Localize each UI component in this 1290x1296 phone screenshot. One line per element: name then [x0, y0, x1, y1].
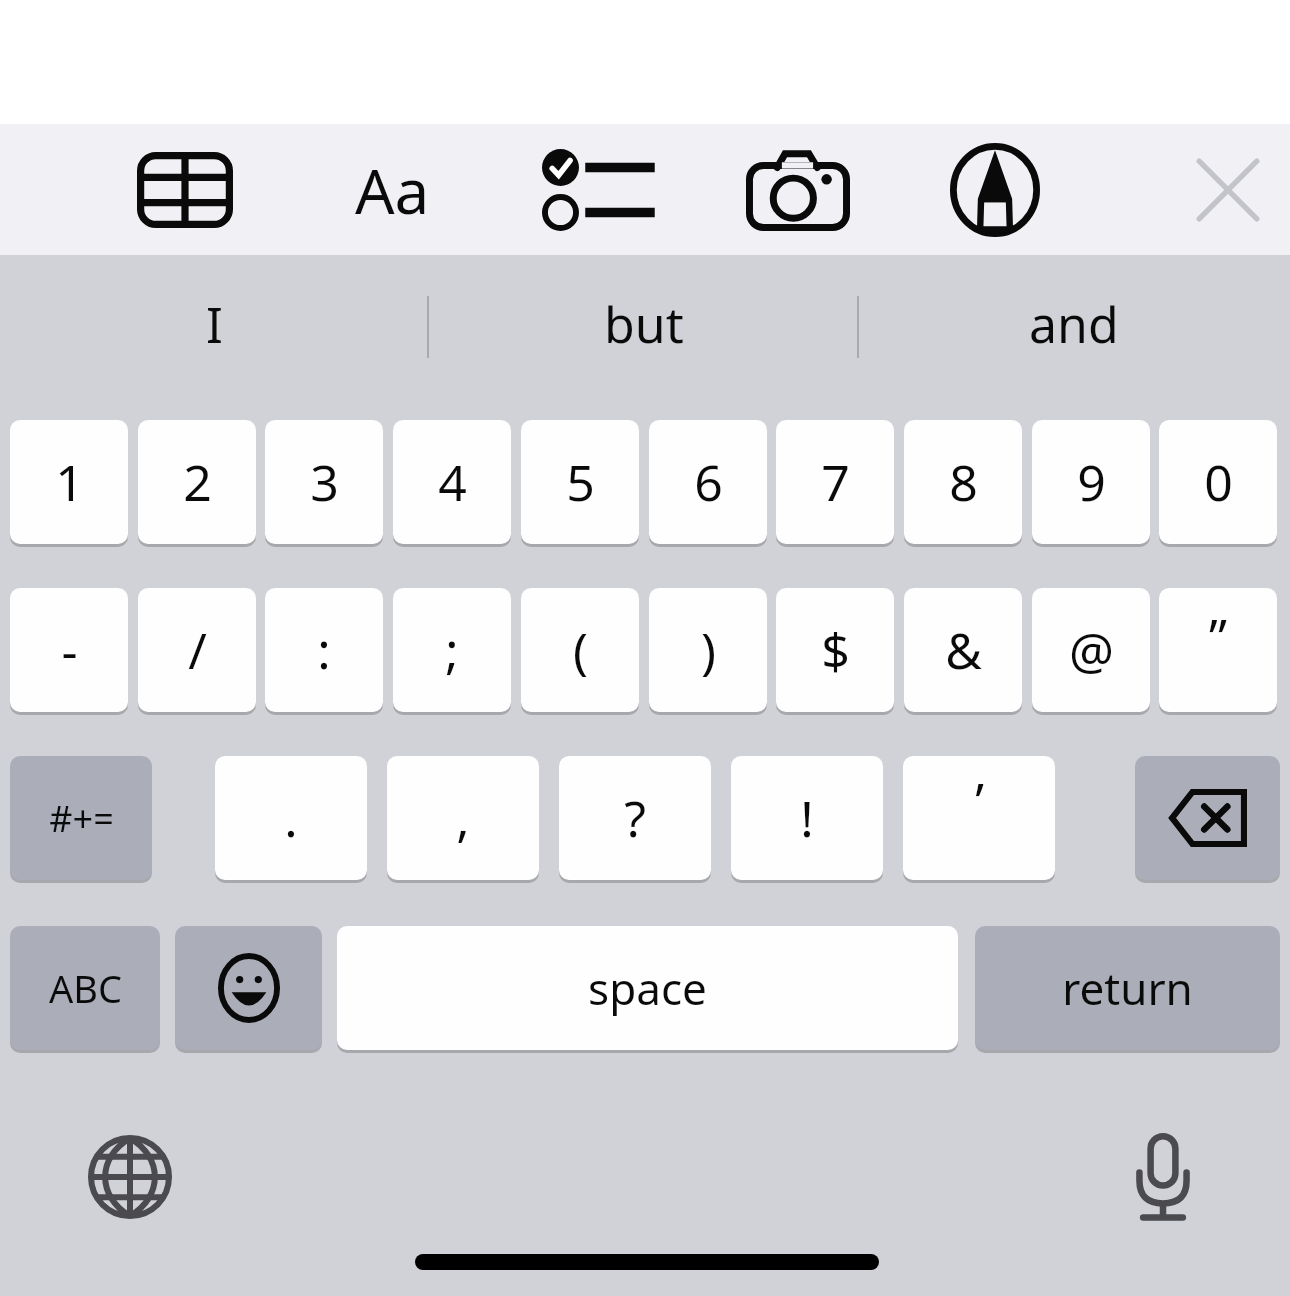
staticText: and	[1029, 290, 1119, 358]
button[interactable]: 5	[521, 420, 639, 544]
staticText: ”	[1209, 602, 1227, 670]
staticText: #+=	[49, 794, 114, 843]
staticText: 1	[55, 448, 84, 516]
staticText: return	[1062, 958, 1193, 1018]
button[interactable]: Checklist	[525, 124, 665, 255]
staticText: 2	[183, 448, 212, 516]
button[interactable]: Camera	[730, 124, 865, 255]
staticText: !	[800, 784, 814, 852]
staticText: ABC	[49, 962, 122, 1014]
button[interactable]: ;	[393, 588, 511, 712]
button[interactable]: :	[265, 588, 383, 712]
staticText: ,	[456, 784, 470, 852]
staticText: ’	[975, 766, 984, 834]
staticText: I	[206, 290, 223, 358]
staticText: 8	[949, 448, 978, 516]
staticText: :	[317, 616, 331, 684]
button[interactable]: 1	[10, 420, 128, 544]
button[interactable]: Close	[1178, 124, 1278, 255]
button[interactable]: 2	[138, 420, 256, 544]
button[interactable]: $	[776, 588, 894, 712]
button[interactable]: Insert table	[120, 124, 250, 255]
button[interactable]: @	[1032, 588, 1150, 712]
staticText: $	[821, 616, 850, 684]
staticText: 3	[310, 448, 339, 516]
button[interactable]: .	[215, 756, 367, 880]
staticText: (	[573, 616, 588, 684]
staticText: 0	[1204, 448, 1233, 516]
button[interactable]: )	[649, 588, 767, 712]
staticText: 5	[566, 448, 595, 516]
button[interactable]: Dictation	[1118, 1130, 1208, 1224]
button[interactable]: 4	[393, 420, 511, 544]
button[interactable]: but	[430, 262, 858, 386]
button[interactable]: 0	[1159, 420, 1277, 544]
staticText: Aa	[355, 148, 430, 232]
button[interactable]: #+=	[10, 756, 152, 880]
button[interactable]: 8	[904, 420, 1022, 544]
staticText: ;	[445, 616, 459, 684]
staticText: but	[604, 290, 684, 358]
button[interactable]: ,	[387, 756, 539, 880]
staticText: 4	[438, 448, 467, 516]
button[interactable]: Emoji keyboard	[175, 926, 322, 1050]
button[interactable]: -	[10, 588, 128, 712]
button[interactable]: 3	[265, 420, 383, 544]
staticText: @	[1069, 616, 1114, 684]
staticText: &	[945, 616, 982, 684]
button[interactable]: /	[138, 588, 256, 712]
button[interactable]: return	[975, 926, 1280, 1050]
button[interactable]: ABC	[10, 926, 160, 1050]
button[interactable]: &	[904, 588, 1022, 712]
staticText: .	[284, 784, 298, 852]
staticText: ?	[624, 784, 646, 852]
staticText: space	[588, 958, 707, 1018]
button[interactable]: Markup	[930, 124, 1060, 255]
staticText: 6	[694, 448, 723, 516]
button[interactable]: ’	[903, 756, 1055, 880]
button[interactable]: I	[0, 262, 428, 386]
staticText: 7	[821, 448, 850, 516]
button[interactable]: !	[731, 756, 883, 880]
staticText: 9	[1077, 448, 1106, 516]
button[interactable]: 9	[1032, 420, 1150, 544]
button[interactable]: space	[337, 926, 958, 1050]
staticText: )	[701, 616, 716, 684]
staticText: /	[188, 616, 207, 684]
button[interactable]: Backspace	[1135, 756, 1280, 880]
staticText: -	[61, 616, 78, 684]
button[interactable]: (	[521, 588, 639, 712]
button[interactable]: and	[860, 262, 1288, 386]
button[interactable]: 6	[649, 420, 767, 544]
button[interactable]: ”	[1159, 588, 1277, 712]
button[interactable]: Text format	[322, 124, 462, 255]
button[interactable]: ?	[559, 756, 711, 880]
button[interactable]: Switch keyboard	[85, 1132, 175, 1222]
button[interactable]: 7	[776, 420, 894, 544]
